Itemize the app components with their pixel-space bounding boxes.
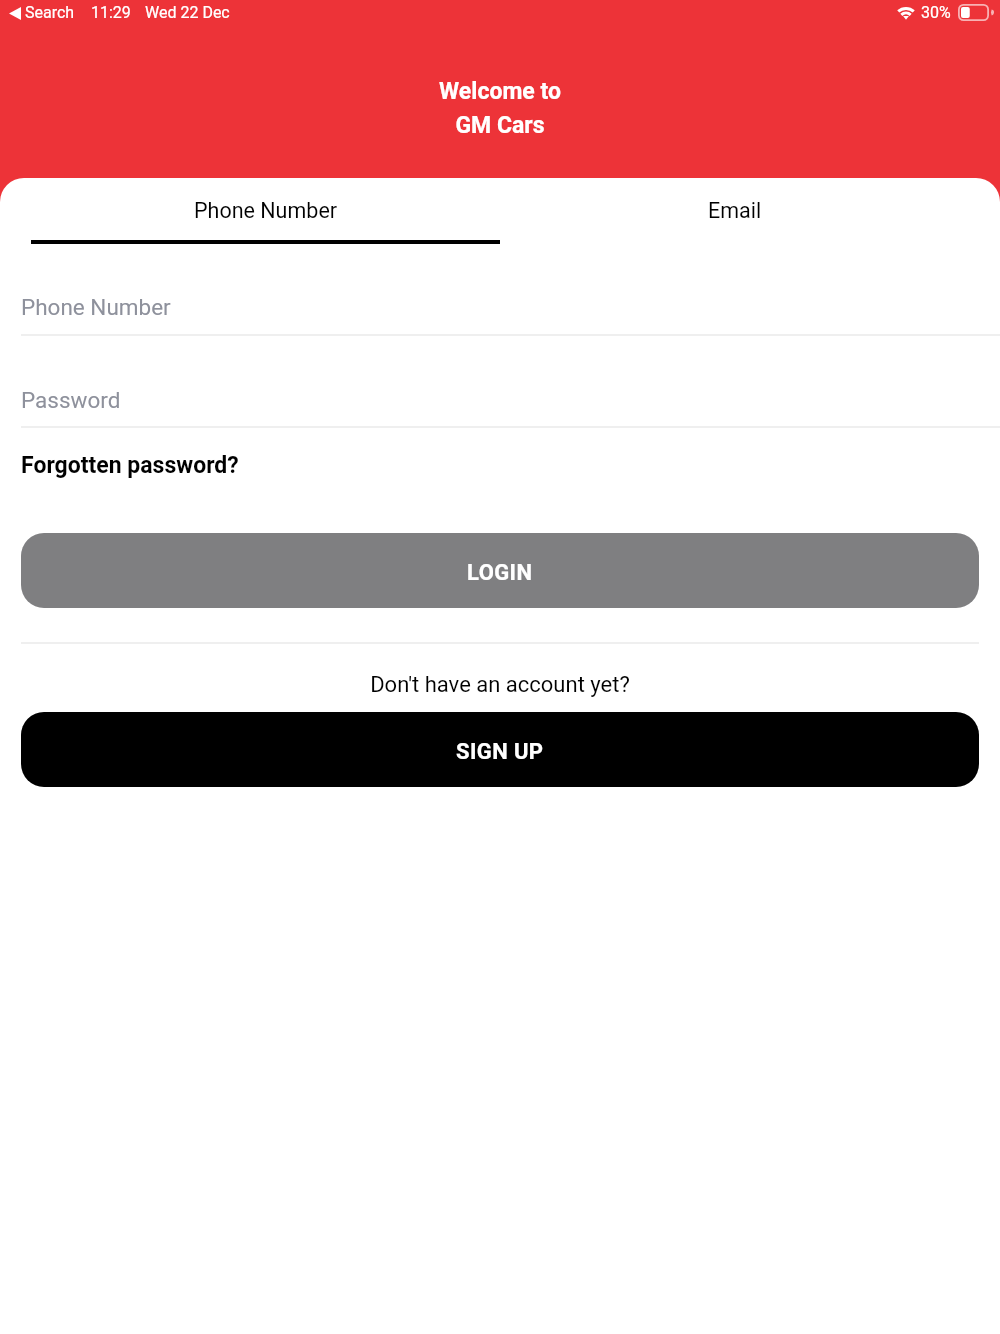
button[interactable]: Email [500,178,969,242]
button[interactable]: Phone Number [31,178,500,242]
button[interactable]: Forgotten password? [21,452,239,479]
staticText: Wed 22 Dec [145,3,230,22]
other: Wi-Fi [896,4,916,21]
staticText: Email [708,198,762,223]
staticText: LOGIN [467,560,533,586]
button[interactable]: Password [0,370,1000,430]
staticText: Welcome to [0,78,1000,105]
other: Back to Search [9,7,21,20]
button[interactable]: Phone Number [0,277,1000,337]
staticText: Search [25,3,75,22]
staticText: SIGN UP [456,739,544,765]
staticText: Don't have an account yet? [0,672,1000,698]
button[interactable]: SIGN UP [21,712,979,787]
staticText: 30% [921,3,951,22]
staticText: GM Cars [0,112,1000,139]
staticText: Phone Number [194,198,338,223]
button[interactable]: LOGIN [21,533,979,608]
staticText: Phone Number [21,294,171,320]
other: Battery 30 percent [958,4,993,21]
staticText: Forgotten password? [21,452,239,479]
staticText: Password [21,387,121,413]
staticText: 11:29 [91,3,131,22]
